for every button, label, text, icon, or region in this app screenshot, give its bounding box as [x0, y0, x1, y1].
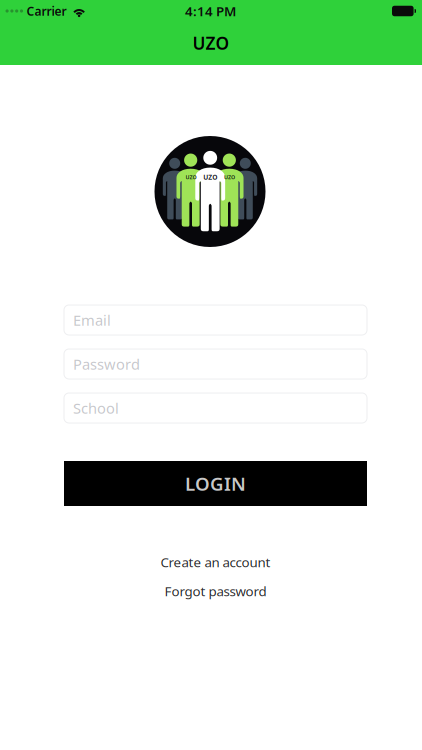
- button[interactable]: LOGIN: [64, 461, 367, 506]
- staticText: UZO: [224, 174, 235, 181]
- staticText: 4:14 PM: [185, 2, 236, 20]
- staticText: Create an account: [160, 553, 270, 571]
- button[interactable]: Forgot password: [64, 581, 367, 601]
- staticText: Password: [73, 354, 140, 374]
- staticText: Forgot password: [164, 582, 266, 600]
- staticText: Email: [73, 310, 111, 330]
- staticText: School: [73, 398, 119, 418]
- staticText: UZO: [192, 31, 229, 54]
- button[interactable]: Email: [64, 305, 367, 335]
- staticText: Carrier: [27, 3, 67, 19]
- staticText: LOGIN: [185, 471, 246, 496]
- button[interactable]: School: [64, 393, 367, 423]
- staticText: UZO: [203, 173, 217, 181]
- staticText: UZO: [185, 174, 196, 181]
- button[interactable]: Password: [64, 349, 367, 379]
- button[interactable]: Create an account: [64, 552, 367, 572]
